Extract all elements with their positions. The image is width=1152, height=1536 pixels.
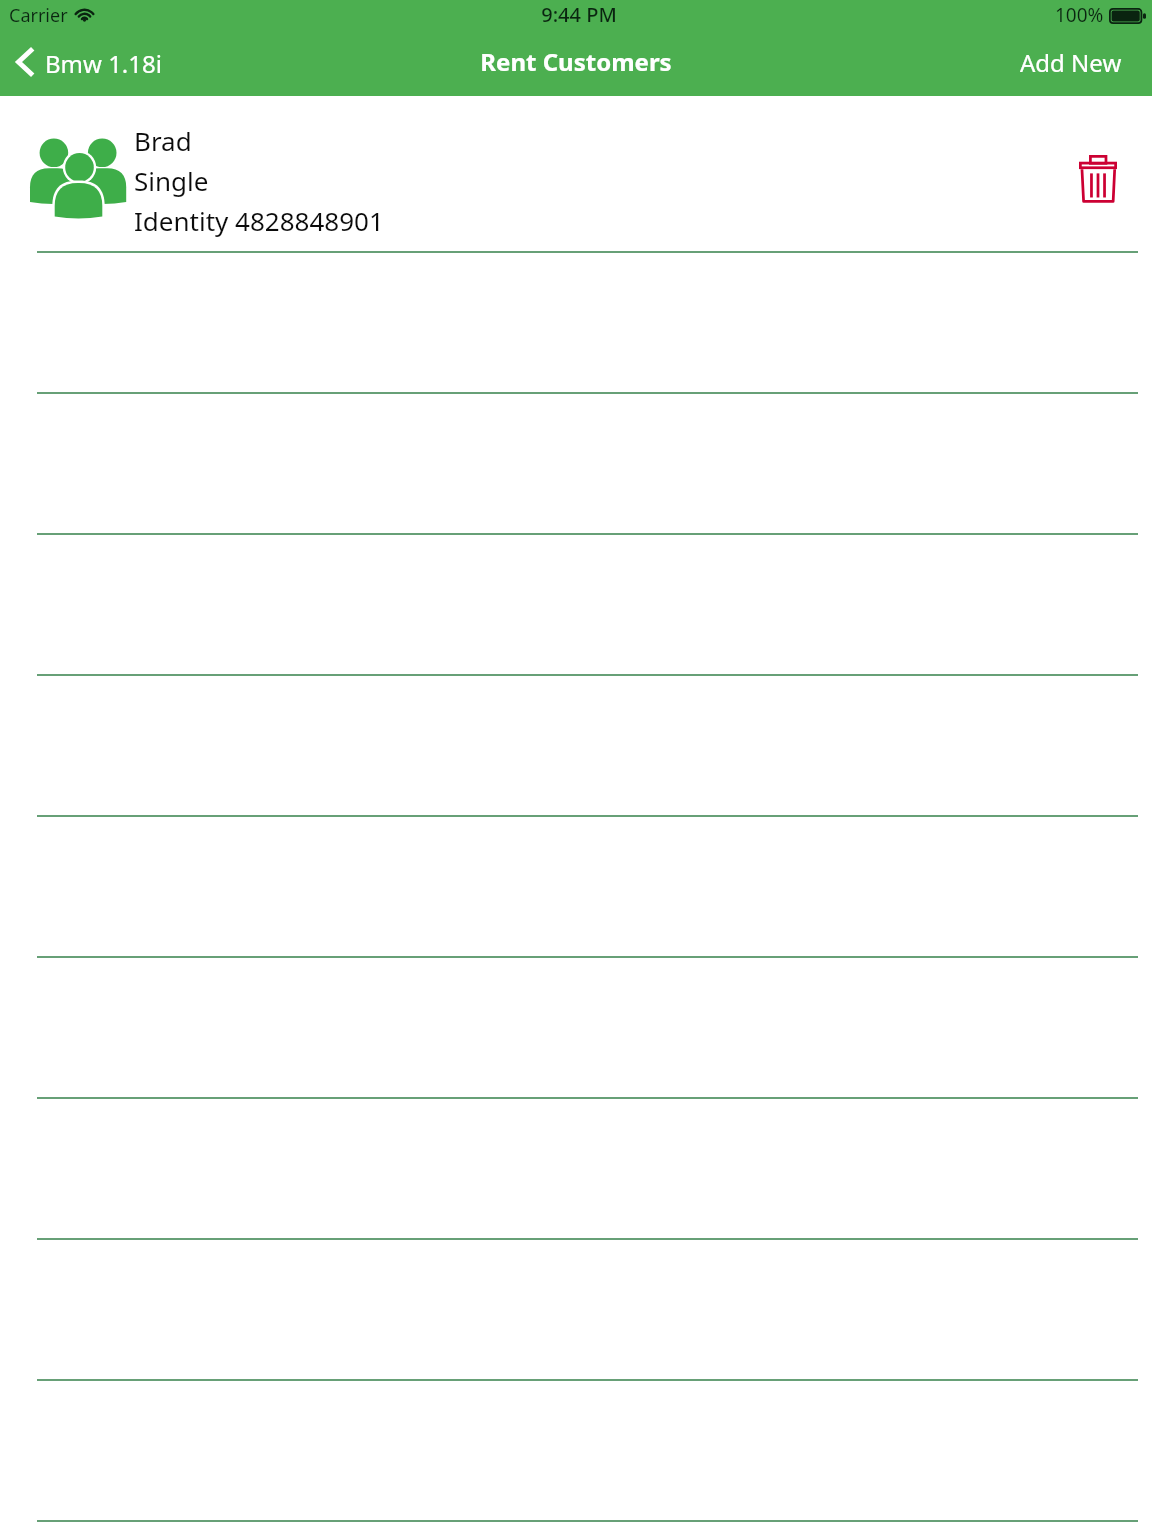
staticText: Rent Customers <box>0 45 1152 78</box>
button[interactable]: Add New <box>1000 34 1152 90</box>
button[interactable] <box>0 1100 1152 1241</box>
button[interactable] <box>0 254 1152 395</box>
staticText: Single <box>134 163 209 198</box>
staticText: 9:44 PM <box>3 1 1152 28</box>
button[interactable]: Brad <box>0 96 1152 254</box>
button[interactable] <box>0 1241 1152 1382</box>
button[interactable]: Delete <box>1063 142 1133 216</box>
staticText: 100% <box>1055 2 1104 28</box>
button[interactable] <box>0 1382 1152 1523</box>
staticText: Bmw 1.18i <box>45 47 162 80</box>
staticText: Carrier <box>9 3 68 28</box>
staticText: Identity 4828848901 <box>134 203 384 238</box>
staticText: Add New <box>1020 46 1122 79</box>
button[interactable] <box>0 536 1152 677</box>
button[interactable] <box>0 395 1152 536</box>
button[interactable] <box>0 677 1152 818</box>
button[interactable] <box>0 818 1152 959</box>
staticText: Brad <box>134 123 192 158</box>
button[interactable]: Bmw 1.18i <box>0 35 176 91</box>
button[interactable] <box>0 959 1152 1100</box>
